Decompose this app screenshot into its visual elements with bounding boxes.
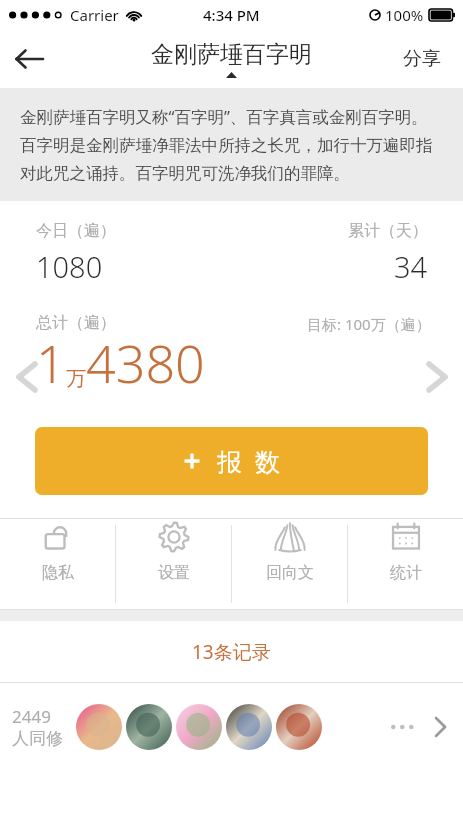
staticText: 1 [36, 327, 66, 398]
staticText: Carrier [70, 5, 119, 25]
button[interactable]: 报 数 [35, 427, 428, 495]
other: More [427, 710, 453, 744]
button[interactable]: 13条记录 [0, 621, 463, 682]
button[interactable]: 统计 [348, 519, 463, 583]
staticText: 报 数 [217, 444, 281, 478]
button[interactable]: Previous [6, 353, 48, 401]
button[interactable]: 隐私 [0, 519, 115, 583]
staticText: 4380 [86, 327, 205, 398]
staticText: 分享 [403, 47, 441, 71]
staticText: 1080 [36, 247, 103, 286]
staticText: 总计（遍） [36, 313, 116, 333]
staticText: 今日（遍） [36, 221, 116, 241]
staticText: 100% [385, 5, 424, 25]
button[interactable]: 分享 [399, 39, 445, 79]
button[interactable]: 回向文 [232, 519, 347, 583]
staticText: 统计 [390, 563, 422, 583]
staticText: 13条记录 [192, 639, 271, 665]
button[interactable]: Next [416, 353, 458, 401]
staticText: 2449 [12, 705, 51, 728]
button[interactable]: 设置 [116, 519, 231, 583]
staticText: 34 [394, 247, 428, 286]
staticText: 金刚萨埵百字明又称“百字明”、百字真言或金刚百字明。百字明是金刚萨埵净罪法中所持… [20, 105, 443, 184]
staticText: 目标: 100万（遍） [307, 314, 431, 334]
staticText: 人同修 [12, 728, 63, 749]
staticText: 回向文 [266, 563, 314, 583]
button[interactable]: 2449 [0, 683, 463, 771]
staticText: 4:34 PM [203, 5, 260, 25]
staticText: 累计（天） [348, 221, 428, 241]
staticText: 隐私 [42, 563, 74, 583]
button[interactable]: Back [0, 33, 58, 85]
staticText: 设置 [158, 563, 190, 583]
staticText: 金刚萨埵百字明 [151, 40, 312, 69]
staticText: 万 [66, 366, 86, 391]
